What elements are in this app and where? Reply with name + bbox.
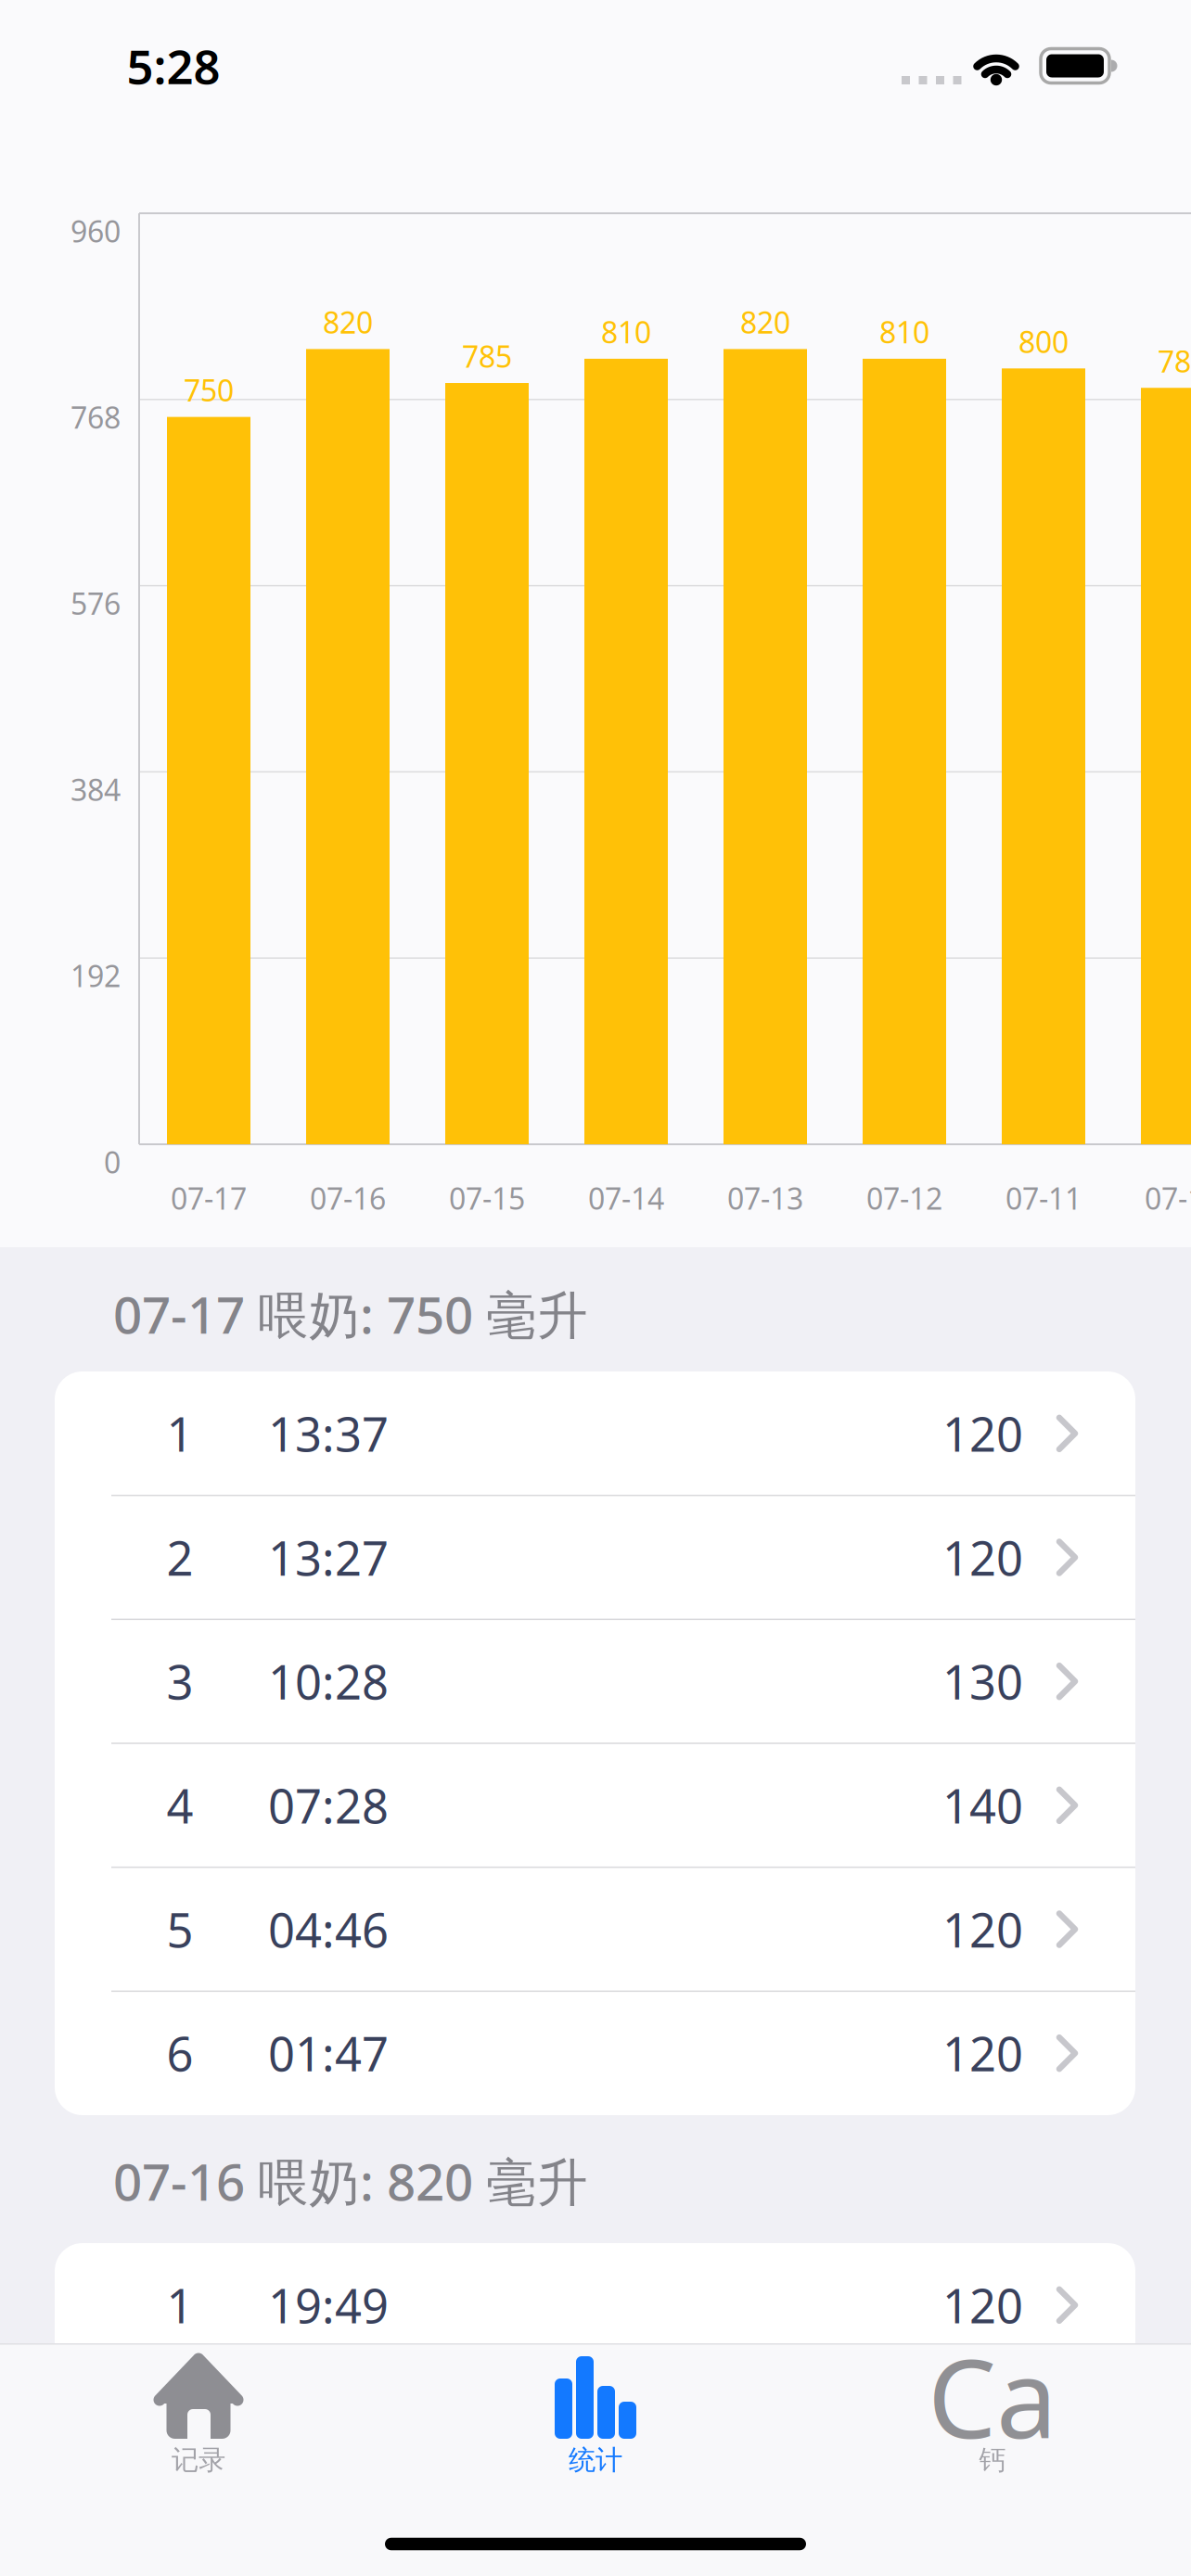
- staticText: 统计: [569, 2443, 622, 2477]
- button[interactable]: 5: [55, 1867, 1135, 1991]
- button[interactable]: 2: [55, 1495, 1135, 1619]
- staticText: 750: [184, 370, 234, 410]
- button[interactable]: 3: [55, 1619, 1135, 1743]
- staticText: 07:28: [268, 1774, 389, 1836]
- staticText: Ca: [928, 2324, 1057, 2468]
- staticText: 4: [166, 1774, 193, 1836]
- staticText: 07-17: [171, 1178, 247, 1218]
- staticText: 04:46: [268, 1898, 389, 1960]
- staticText: 1: [166, 1402, 193, 1465]
- staticText: 120: [942, 1898, 1023, 1960]
- staticText: 19:49: [268, 2274, 389, 2336]
- staticText: 820: [323, 302, 373, 342]
- staticText: 07-10: [1145, 1178, 1191, 1218]
- staticText: 13:37: [268, 1402, 389, 1465]
- staticText: 120: [942, 1526, 1023, 1589]
- button[interactable]: 6: [55, 1991, 1135, 2115]
- staticText: 960: [70, 211, 121, 251]
- staticText: 120: [942, 2274, 1023, 2336]
- staticText: 07-14: [588, 1178, 664, 1218]
- button[interactable]: 1: [55, 1371, 1135, 1495]
- staticText: 10:28: [268, 1650, 389, 1713]
- button[interactable]: 1: [55, 2243, 1135, 2367]
- staticText: 07-12: [866, 1178, 942, 1218]
- staticText: 810: [879, 312, 929, 352]
- button[interactable]: Ca: [794, 2343, 1191, 2576]
- staticText: 13:27: [268, 1526, 389, 1589]
- staticText: 07-16: [310, 1178, 386, 1218]
- staticText: 07-15: [449, 1178, 525, 1218]
- staticText: 780: [1158, 341, 1191, 381]
- staticText: 钙: [979, 2443, 1006, 2477]
- staticText: 785: [462, 336, 512, 376]
- button[interactable]: 统计: [397, 2343, 794, 2576]
- staticText: 01:47: [268, 2022, 389, 2084]
- staticText: 3: [166, 1650, 193, 1713]
- staticText: 07-11: [1005, 1178, 1082, 1218]
- staticText: 1: [166, 2274, 193, 2336]
- staticText: 5: [166, 1898, 193, 1960]
- staticText: 120: [942, 2022, 1023, 2084]
- staticText: 576: [70, 584, 121, 623]
- staticText: 07-17 喂奶: 750 毫升: [113, 1280, 588, 1348]
- staticText: 6: [166, 2022, 193, 2084]
- staticText: 5:28: [127, 35, 220, 97]
- staticText: 120: [942, 1402, 1023, 1465]
- staticText: 记录: [172, 2443, 225, 2477]
- staticText: 810: [601, 312, 651, 352]
- staticText: 2: [166, 1526, 193, 1589]
- staticText: 07-16 喂奶: 820 毫升: [113, 2147, 588, 2215]
- button[interactable]: 记录: [0, 2343, 397, 2576]
- staticText: 130: [942, 1650, 1023, 1713]
- staticText: 07-13: [727, 1178, 803, 1218]
- staticText: 140: [942, 1774, 1023, 1836]
- staticText: 820: [740, 302, 790, 342]
- staticText: 800: [1018, 322, 1069, 361]
- staticText: 384: [70, 770, 121, 809]
- staticText: 768: [70, 397, 121, 437]
- button[interactable]: 4: [55, 1743, 1135, 1867]
- staticText: 192: [70, 956, 121, 995]
- staticText: 0: [104, 1142, 121, 1182]
